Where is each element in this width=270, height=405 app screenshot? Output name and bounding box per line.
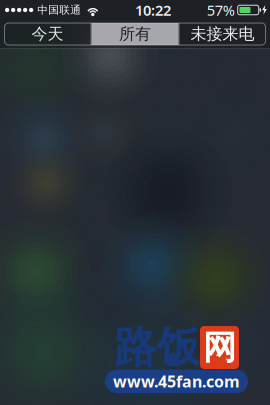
staticText: 10:22	[135, 0, 171, 20]
staticText: 未接来电	[190, 24, 254, 44]
staticText: 中国联通	[37, 3, 81, 16]
button[interactable]: 未接来电	[179, 23, 265, 45]
staticText: www.45fan.com	[113, 371, 240, 392]
staticText: 57%	[207, 0, 235, 20]
staticText: 所有	[119, 24, 151, 44]
staticText: 今天	[31, 24, 63, 44]
staticText: 路饭	[114, 321, 200, 374]
button[interactable]: 所有	[91, 23, 178, 45]
button[interactable]: 今天	[4, 23, 90, 45]
staticText: 网	[203, 327, 236, 368]
